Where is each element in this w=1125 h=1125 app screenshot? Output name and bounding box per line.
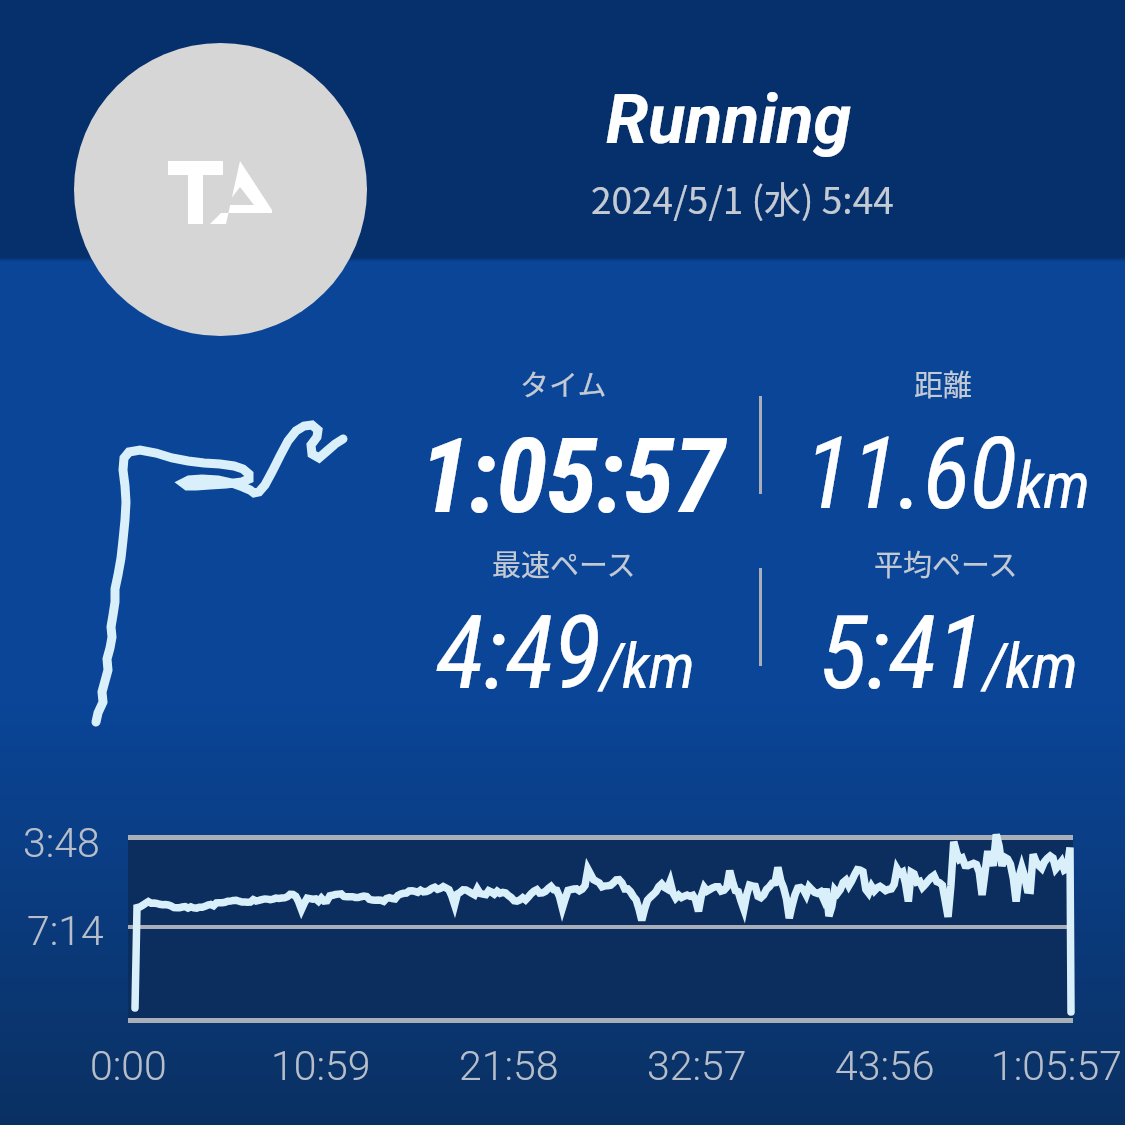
staticText: 3:48 xyxy=(23,819,100,867)
button[interactable]: Best pace 4:49 per km xyxy=(380,532,752,702)
staticText: 7:14 xyxy=(27,907,104,955)
staticText: Running xyxy=(606,80,852,160)
staticText: 距離 xyxy=(914,362,973,404)
staticText: 0:00 xyxy=(90,1042,167,1090)
button[interactable]: Profile xyxy=(74,43,367,336)
staticText: 11.60km xyxy=(804,415,1089,532)
button[interactable]: Route map xyxy=(70,400,370,740)
staticText: 21:58 xyxy=(459,1042,559,1090)
staticText: 10:59 xyxy=(271,1042,371,1090)
staticText: 32:57 xyxy=(647,1042,747,1090)
staticText: タイム xyxy=(520,362,607,404)
staticText: 2024/5/1 (水) 5:44 xyxy=(591,171,894,225)
button[interactable]: Time 1:05:57 xyxy=(380,352,752,522)
button[interactable]: Average pace 5:41 per km xyxy=(766,532,1106,702)
button[interactable]: Pace chart xyxy=(0,820,1125,1040)
staticText: 43:56 xyxy=(835,1042,935,1090)
staticText: 5:41/km xyxy=(819,594,1077,712)
staticText: 1:05:57 xyxy=(419,416,724,538)
button[interactable]: Distance 11.60 km xyxy=(766,352,1106,522)
staticText: 4:49/km xyxy=(436,594,694,712)
staticText: 1:05:57 xyxy=(991,1042,1122,1090)
staticText: 最速ペース xyxy=(492,542,636,584)
staticText: 平均ペース xyxy=(874,542,1018,584)
